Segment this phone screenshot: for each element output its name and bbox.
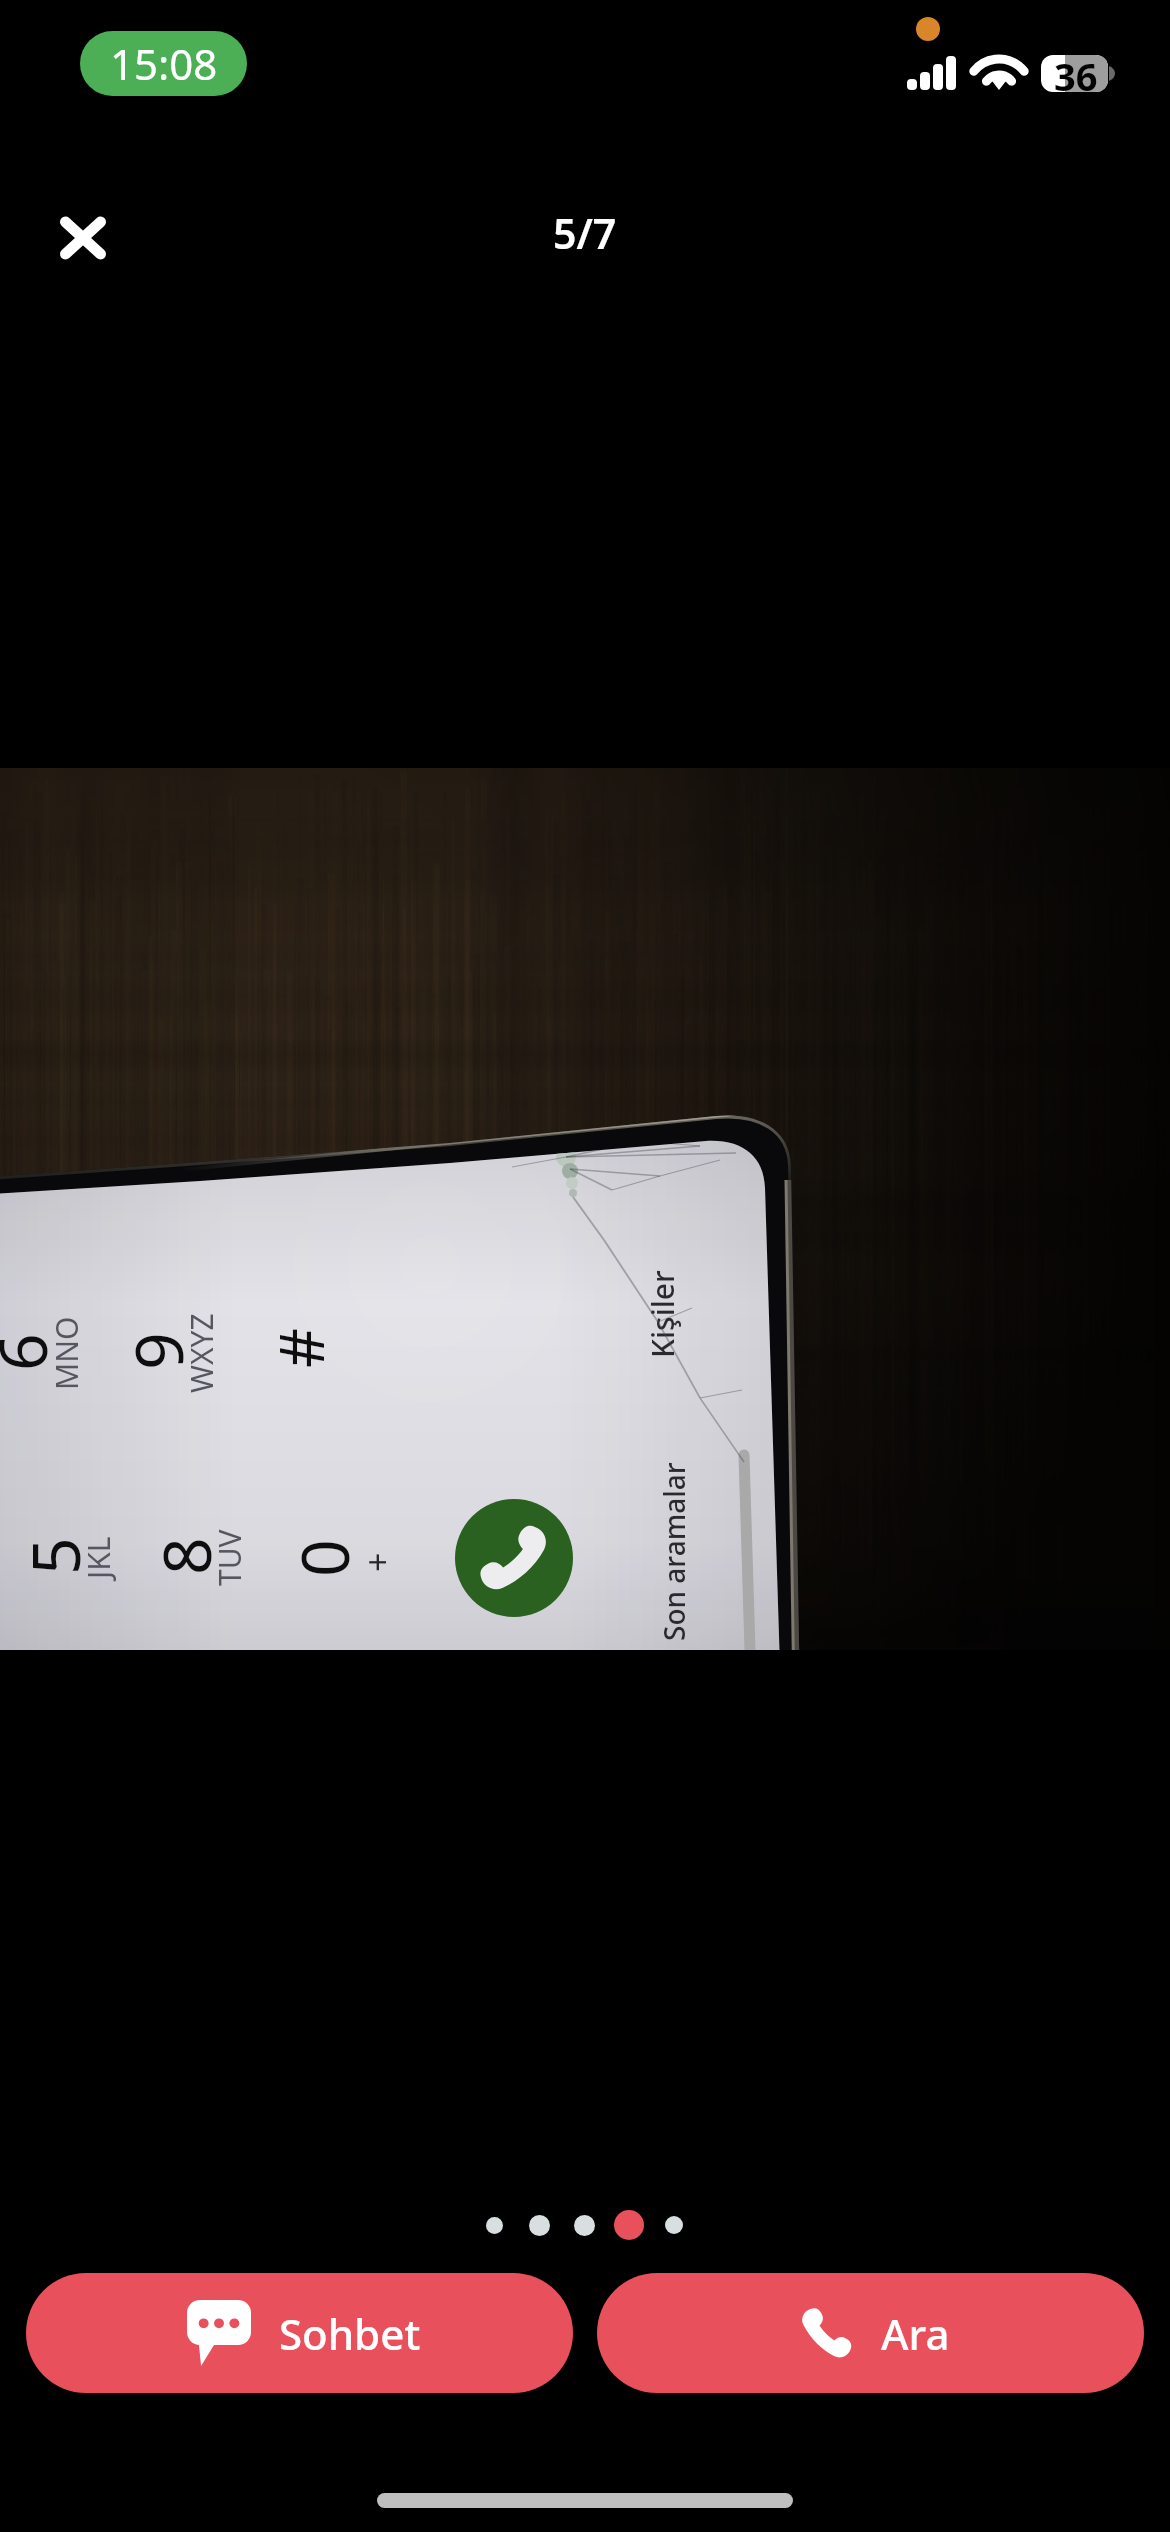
button[interactable]: Photo 5 of 7 [0, 768, 1170, 1650]
button[interactable]: Ara [597, 2273, 1144, 2393]
staticText: JKL [78, 1536, 119, 1579]
staticText: 9 [112, 1332, 202, 1370]
staticText: WXYZ [181, 1313, 222, 1393]
staticText: 15:08 [110, 35, 218, 92]
staticText: Ara [881, 2305, 950, 2362]
staticText: + [354, 1552, 400, 1572]
staticText: 6 [0, 1333, 66, 1371]
button[interactable]: Close [44, 199, 122, 277]
staticText: TUV [209, 1529, 250, 1586]
staticText: Son aramalar [655, 1462, 693, 1641]
staticText: 0 [278, 1539, 368, 1577]
staticText: # [258, 1327, 342, 1368]
button[interactable]: Sohbet [26, 2273, 573, 2393]
staticText: Kişiler [642, 1270, 683, 1358]
staticText: 8 [140, 1537, 230, 1575]
staticText: 36 [1054, 50, 1098, 92]
staticText: 5 [9, 1537, 99, 1575]
staticText: 5/7 [553, 205, 617, 261]
staticText: Sohbet [279, 2305, 421, 2362]
staticText: MNO [46, 1316, 87, 1390]
